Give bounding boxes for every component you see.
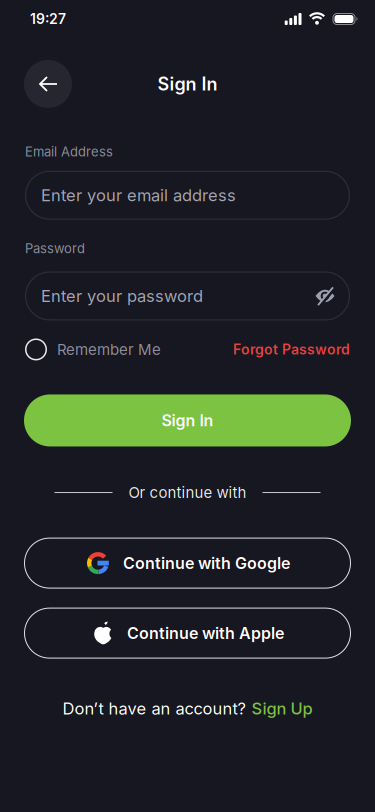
button[interactable]: Continue with Apple xyxy=(24,608,351,659)
button[interactable]: Remember Me xyxy=(25,338,161,360)
staticText: Sign In xyxy=(161,411,213,430)
staticText: Email Address xyxy=(25,144,113,160)
button[interactable]: Continue with Google xyxy=(24,538,351,589)
button[interactable]: Back xyxy=(24,60,72,108)
staticText: Continue with Google xyxy=(123,553,290,573)
staticText: Forgot Password xyxy=(233,341,350,358)
button[interactable]: Forgot Password xyxy=(233,341,350,358)
staticText: Don’t have an account? xyxy=(62,699,245,719)
staticText: Password xyxy=(25,241,85,256)
button[interactable]: Show password xyxy=(314,285,336,307)
staticText: Enter your email address xyxy=(41,185,236,205)
staticText: Sign Up xyxy=(251,699,312,719)
button[interactable]: Sign Up xyxy=(251,699,312,719)
staticText: Continue with Apple xyxy=(127,623,284,643)
staticText: Or continue with xyxy=(128,483,246,502)
staticText: Sign In xyxy=(157,73,217,95)
button[interactable]: Sign In xyxy=(24,394,351,446)
staticText: Remember Me xyxy=(57,340,161,358)
staticText: Enter your password xyxy=(41,286,203,306)
staticText: 19:27 xyxy=(30,10,66,27)
